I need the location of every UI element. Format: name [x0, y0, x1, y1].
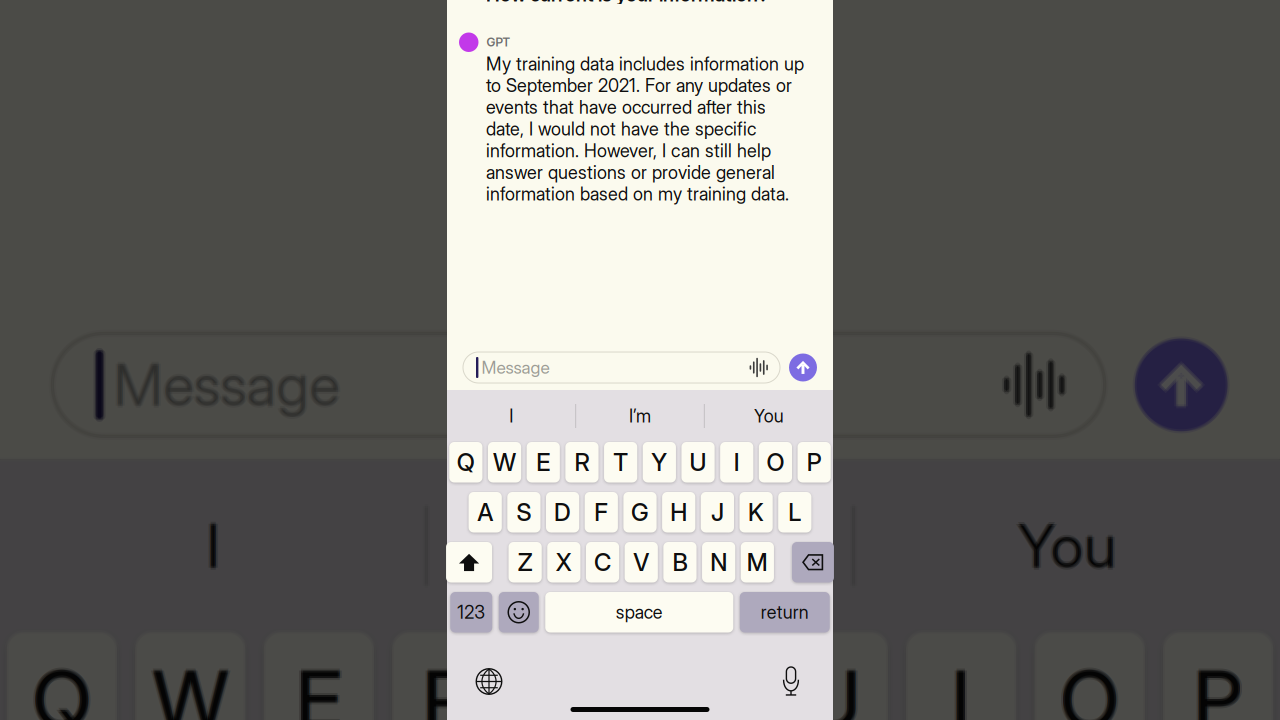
button[interactable]: P [795, 442, 829, 482]
button[interactable]: M [741, 544, 774, 584]
button[interactable]: T [604, 442, 637, 482]
button[interactable]: K [739, 490, 773, 530]
button[interactable]: N [702, 542, 735, 582]
button[interactable]: H [664, 492, 697, 532]
button[interactable]: S [505, 492, 538, 532]
button[interactable]: U [681, 442, 715, 482]
button[interactable]: Message [465, 352, 782, 383]
button[interactable]: Q [449, 444, 482, 484]
button[interactable]: space [545, 592, 733, 632]
button[interactable]: L [778, 492, 811, 532]
button[interactable]: C [586, 540, 619, 580]
button[interactable]: U [681, 440, 715, 480]
button[interactable]: You [705, 390, 832, 442]
button[interactable]: I’m [576, 390, 704, 442]
button[interactable]: P [799, 442, 833, 482]
button[interactable]: M [739, 542, 772, 582]
button[interactable]: Shift [446, 544, 492, 584]
button[interactable]: I [722, 442, 755, 482]
button[interactable]: space [545, 592, 733, 632]
button[interactable]: M [741, 542, 774, 582]
button[interactable]: N [702, 540, 735, 580]
button[interactable]: L [778, 490, 811, 530]
button[interactable]: T [604, 444, 637, 484]
button[interactable]: return [740, 592, 830, 632]
button[interactable]: Emoji [499, 592, 539, 632]
button[interactable]: E [527, 440, 560, 480]
button[interactable]: Dictate [771, 666, 811, 696]
button[interactable]: I [720, 440, 753, 480]
button[interactable]: Delete [792, 540, 834, 580]
button[interactable]: F [585, 492, 618, 532]
button[interactable]: V [625, 542, 658, 582]
button[interactable]: U [681, 444, 715, 484]
button[interactable]: X [547, 542, 580, 582]
button[interactable]: return [740, 594, 830, 634]
button[interactable]: P [797, 442, 831, 482]
button[interactable]: V [625, 540, 658, 580]
button[interactable]: Shift [446, 540, 492, 580]
button[interactable]: T [604, 440, 637, 480]
button[interactable]: W [488, 444, 521, 484]
button[interactable]: F [587, 492, 620, 532]
button[interactable]: X [549, 542, 582, 582]
button[interactable]: return [738, 592, 828, 632]
button[interactable]: space [545, 590, 733, 630]
button[interactable]: Numbers [450, 594, 492, 634]
button[interactable]: Message [463, 350, 780, 381]
button[interactable]: Numbers [450, 590, 492, 630]
button[interactable]: K [739, 492, 773, 532]
button[interactable]: J [699, 492, 732, 532]
button[interactable]: F [585, 490, 618, 530]
button[interactable]: I’m [576, 388, 704, 440]
button[interactable]: D [544, 492, 577, 532]
button[interactable]: You [703, 390, 830, 442]
button[interactable]: S [507, 492, 540, 532]
button[interactable]: O [759, 444, 792, 484]
button[interactable]: E [527, 442, 560, 482]
button[interactable]: Next keyboard [471, 666, 511, 696]
button[interactable]: Z [507, 542, 540, 582]
button[interactable]: E [527, 444, 560, 484]
button[interactable]: D [546, 490, 579, 530]
button[interactable]: J [701, 490, 734, 530]
button[interactable]: O [759, 442, 792, 482]
button[interactable]: V [623, 542, 656, 582]
button[interactable]: space [543, 592, 731, 632]
button[interactable]: return [740, 592, 830, 632]
button[interactable]: Send [789, 353, 817, 381]
button[interactable]: G [623, 494, 657, 534]
button[interactable]: Shift [446, 542, 492, 582]
button[interactable]: S [507, 490, 540, 530]
button[interactable]: O [757, 442, 790, 482]
button[interactable]: Next keyboard [469, 666, 509, 696]
button[interactable]: A [471, 492, 504, 532]
button[interactable]: I’m [576, 390, 704, 442]
button[interactable]: X [545, 542, 578, 582]
button[interactable]: D [546, 492, 579, 532]
button[interactable]: V [625, 542, 658, 582]
button[interactable]: N [704, 542, 737, 582]
button[interactable]: Q [449, 442, 482, 482]
button[interactable]: K [739, 492, 773, 532]
button[interactable]: Message [463, 352, 780, 383]
button[interactable]: Z [511, 542, 544, 582]
button[interactable]: Message [461, 352, 778, 383]
button[interactable]: I [445, 390, 573, 442]
button[interactable]: Emoji [499, 590, 539, 630]
button[interactable]: J [701, 492, 734, 532]
button[interactable]: H [662, 492, 695, 532]
button[interactable]: I’m [576, 392, 704, 444]
button[interactable]: C [586, 542, 619, 582]
button[interactable]: I [718, 442, 751, 482]
button[interactable]: Y [643, 442, 676, 482]
button[interactable]: Next keyboard [467, 666, 507, 696]
button[interactable]: Numbers [450, 592, 492, 632]
button[interactable]: Send [787, 353, 815, 381]
button[interactable]: J [701, 494, 734, 534]
button[interactable]: Send [791, 353, 819, 381]
button[interactable]: Numbers [448, 592, 490, 632]
button[interactable]: V [627, 542, 660, 582]
button[interactable]: A [469, 492, 502, 532]
button[interactable]: T [602, 442, 635, 482]
